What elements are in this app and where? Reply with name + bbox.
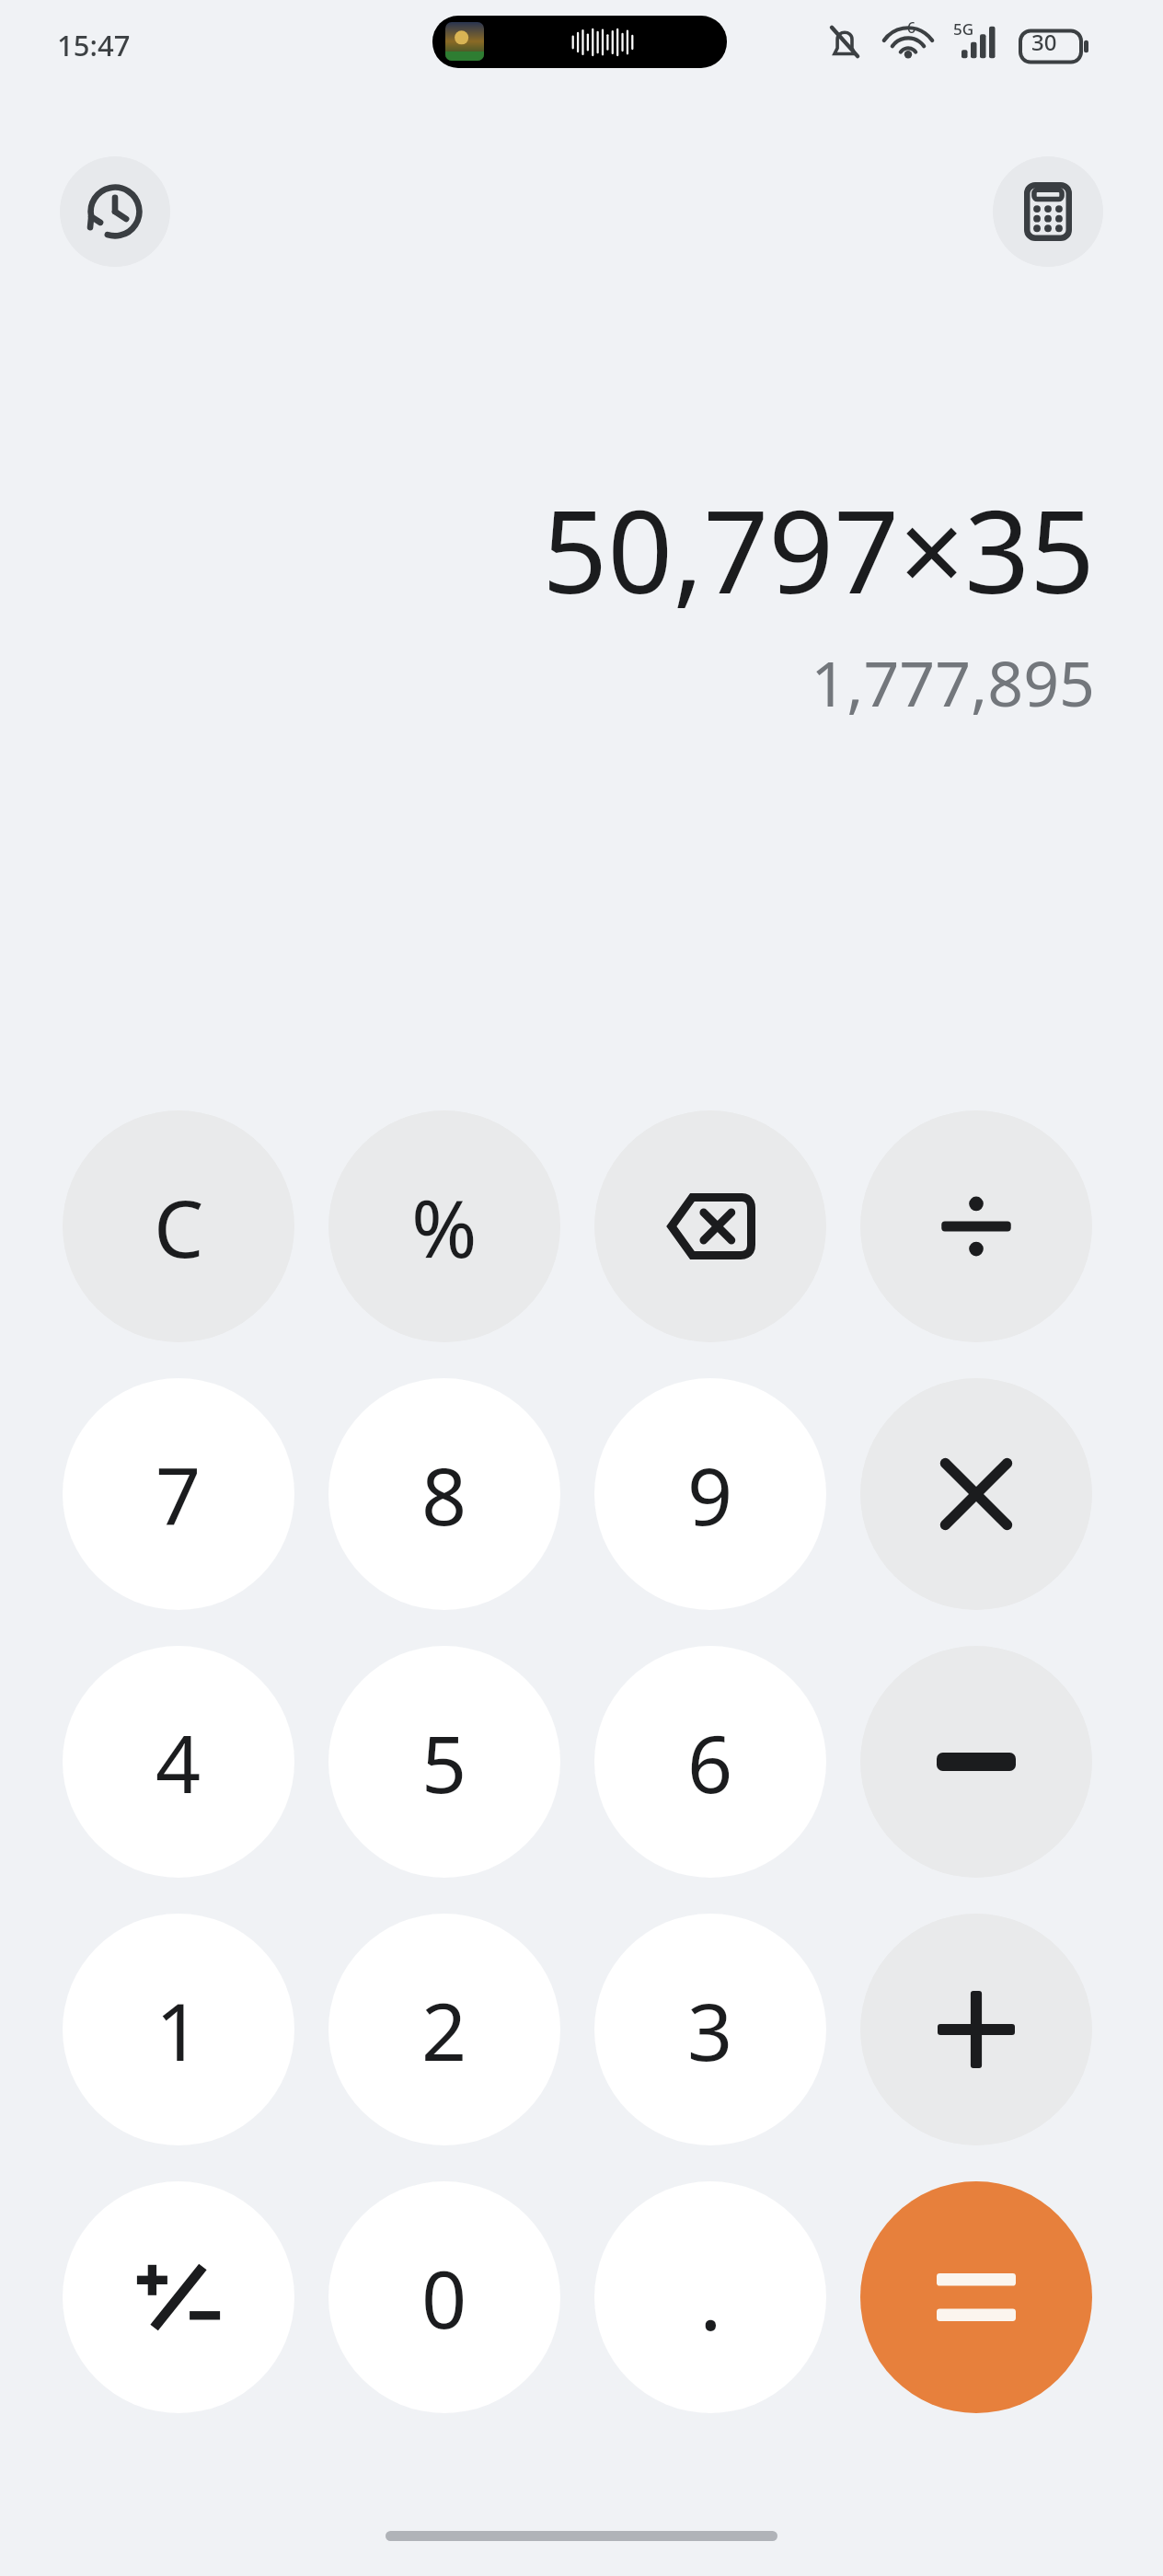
staticText: 3 <box>687 1976 733 2084</box>
button[interactable]: 9 <box>594 1378 826 1610</box>
staticText: 15:47 <box>57 26 131 64</box>
button[interactable]: 1 <box>63 1914 294 2145</box>
staticText: 1,777,895 <box>811 639 1095 725</box>
staticText: 6 <box>907 17 916 38</box>
staticText: 8 <box>421 1441 467 1548</box>
staticText: 30 <box>1031 27 1057 57</box>
button[interactable]: 2 <box>328 1914 560 2145</box>
staticText: 6 <box>687 1708 733 1816</box>
staticText: % <box>411 1173 478 1281</box>
button[interactable]: Backspace <box>594 1110 826 1342</box>
button[interactable]: 7 <box>63 1378 294 1610</box>
staticText: 9 <box>687 1441 733 1548</box>
button[interactable]: . <box>594 2181 826 2413</box>
button[interactable]: 5 <box>328 1646 560 1878</box>
staticText: 4 <box>155 1708 202 1816</box>
button[interactable]: Minus <box>860 1646 1092 1878</box>
button[interactable]: Divide <box>860 1110 1092 1342</box>
staticText: 5G <box>953 18 974 40</box>
button[interactable]: % <box>328 1110 560 1342</box>
button[interactable]: C <box>63 1110 294 1342</box>
staticText: 2 <box>421 1976 467 2084</box>
button[interactable]: Toggle sign <box>63 2181 294 2413</box>
button[interactable]: Calculator mode <box>993 156 1103 267</box>
staticText: 7 <box>155 1441 202 1548</box>
staticText: . <box>699 2240 722 2355</box>
button[interactable]: 3 <box>594 1914 826 2145</box>
button[interactable]: Multiply <box>860 1378 1092 1610</box>
button[interactable]: History <box>60 156 170 267</box>
button[interactable]: 8 <box>328 1378 560 1610</box>
staticText: 5 <box>421 1708 467 1816</box>
staticText: 50,797×35 <box>542 471 1095 627</box>
staticText: 0 <box>421 2244 467 2352</box>
button[interactable]: 4 <box>63 1646 294 1878</box>
button[interactable]: 0 <box>328 2181 560 2413</box>
button[interactable]: Equals <box>860 2181 1092 2413</box>
staticText: 1 <box>155 1976 202 2084</box>
button[interactable]: 6 <box>594 1646 826 1878</box>
button[interactable]: Plus <box>860 1914 1092 2145</box>
staticText: C <box>154 1173 204 1281</box>
